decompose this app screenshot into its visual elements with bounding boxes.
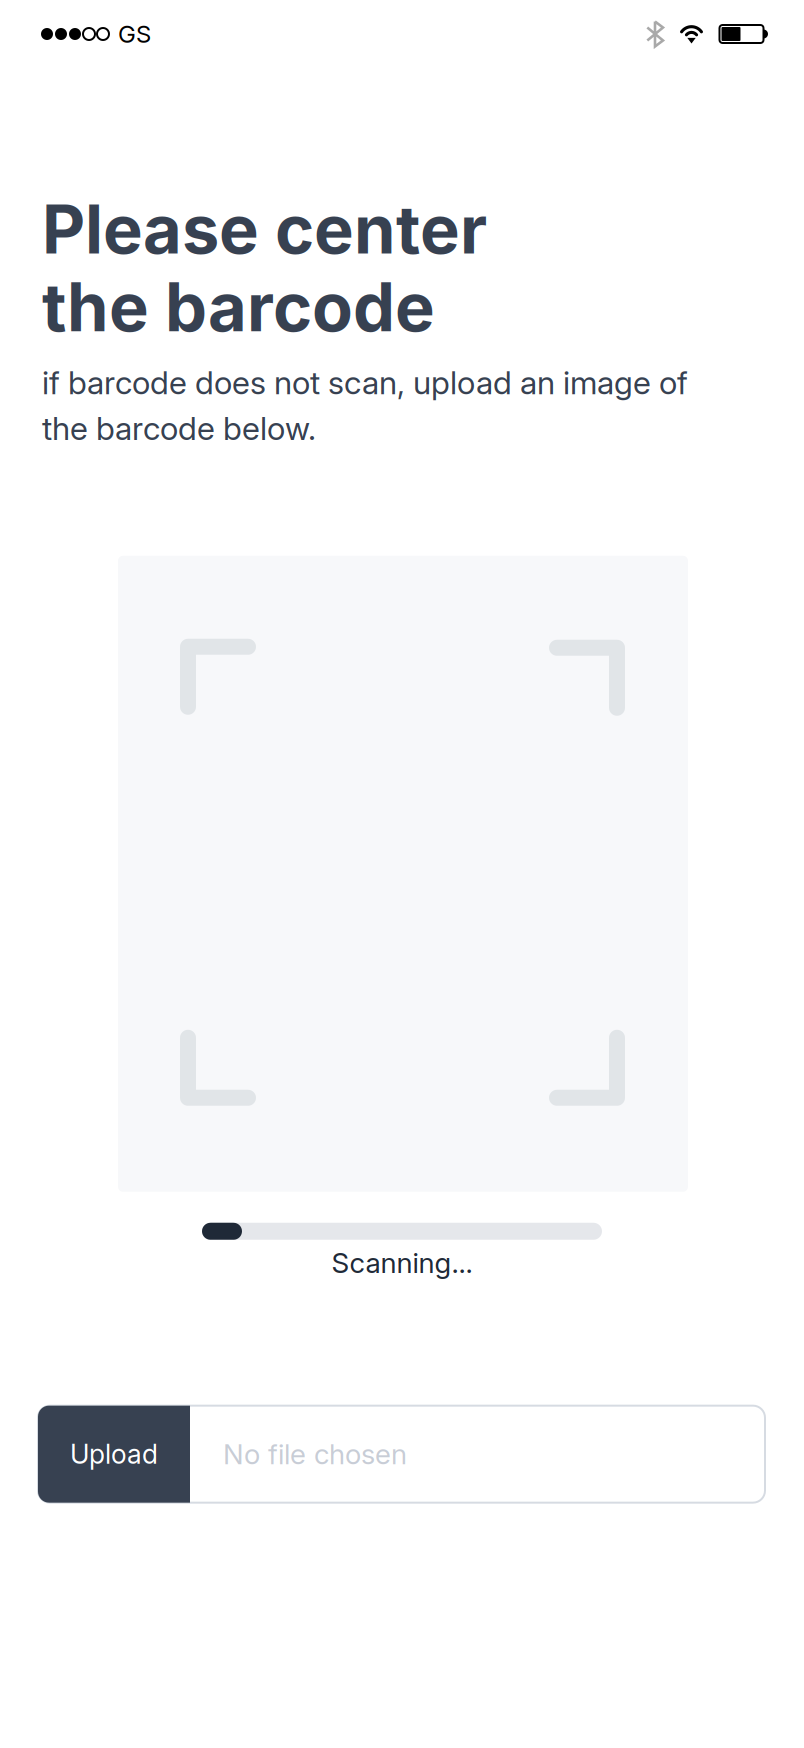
- staticText: Please center: [42, 189, 487, 270]
- staticText: GS: [118, 19, 151, 48]
- staticText: Upload: [70, 1438, 158, 1470]
- staticText: the barcode below.: [42, 409, 316, 448]
- button[interactable]: Upload: [38, 1406, 190, 1503]
- staticText: Scanning...: [331, 1246, 472, 1280]
- staticText: if barcode does not scan, upload an imag…: [42, 363, 688, 402]
- staticText: No file chosen: [223, 1437, 407, 1471]
- button[interactable]: No file chosen: [38, 1406, 765, 1503]
- staticText: the barcode: [42, 267, 435, 347]
